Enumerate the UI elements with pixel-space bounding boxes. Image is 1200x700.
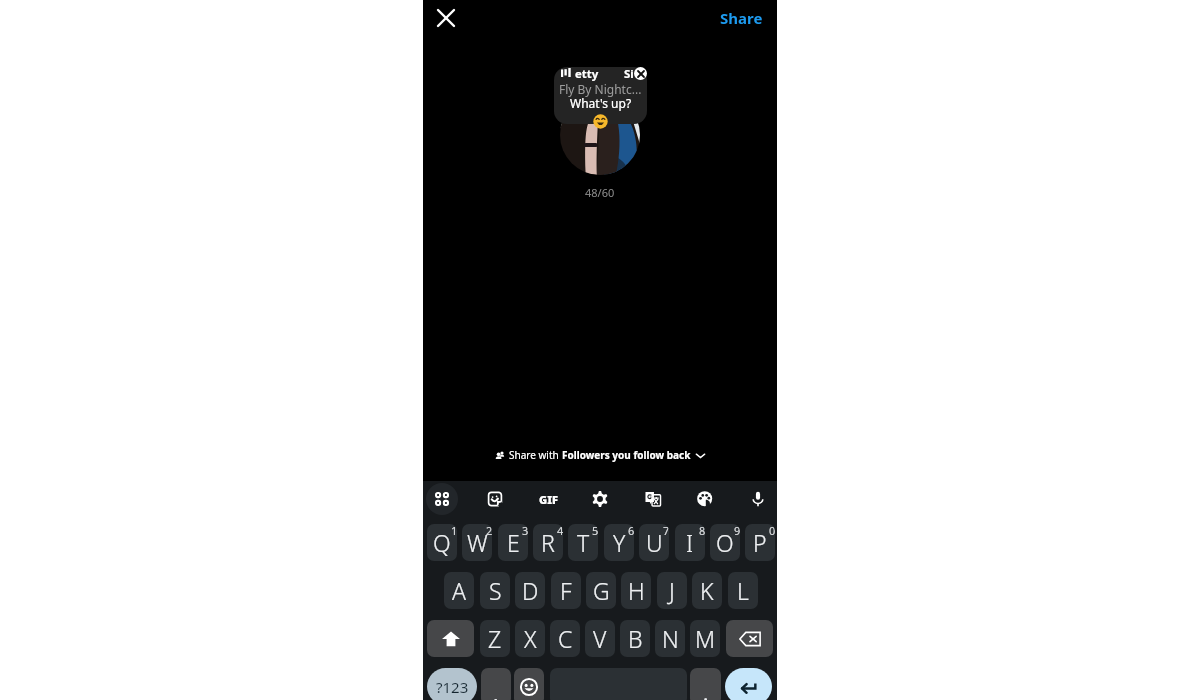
staticText: P — [753, 527, 767, 558]
button[interactable]: Translate — [637, 483, 669, 515]
staticText: N — [662, 623, 679, 654]
button[interactable]: Apps — [426, 483, 458, 515]
staticText: Followers you follow back — [562, 448, 691, 462]
staticText: Fly By Nightc... — [559, 81, 642, 97]
staticText: O — [716, 527, 734, 558]
button[interactable]: I — [675, 524, 705, 561]
staticText: C — [558, 623, 573, 654]
staticText: 4 — [557, 524, 563, 538]
button[interactable]: Enter — [725, 668, 772, 700]
staticText: 9 — [734, 524, 740, 538]
button[interactable]: V — [585, 620, 615, 657]
staticText: . — [703, 680, 709, 700]
staticText: , — [493, 680, 499, 700]
staticText: 0 — [769, 524, 775, 538]
staticText: ?123 — [436, 677, 469, 697]
button[interactable]: O — [710, 524, 740, 561]
button[interactable]: E — [498, 524, 528, 561]
button[interactable]: Settings — [584, 483, 616, 515]
staticText: E — [507, 527, 520, 558]
button[interactable]: M — [690, 620, 720, 657]
button[interactable]: F — [551, 572, 581, 609]
staticText: 1 — [451, 524, 457, 538]
staticText: H — [628, 575, 645, 606]
button[interactable]: Stickers — [479, 483, 511, 515]
staticText: M — [695, 623, 716, 654]
staticText: T — [577, 527, 590, 558]
staticText: 3 — [522, 524, 528, 538]
button[interactable]: G — [586, 572, 616, 609]
button[interactable]: Themes — [689, 483, 721, 515]
staticText: Share — [720, 8, 763, 28]
staticText: 5 — [592, 524, 598, 538]
button[interactable]: Remove music — [634, 67, 647, 80]
staticText: U — [646, 527, 663, 558]
staticText: Si — [624, 67, 634, 82]
button[interactable]: Voice input — [742, 483, 774, 515]
staticText: W — [467, 527, 488, 558]
button[interactable]: K — [692, 572, 722, 609]
button[interactable]: D — [515, 572, 545, 609]
button[interactable]: H — [621, 572, 651, 609]
staticText: L — [737, 575, 749, 606]
staticText: 48/60 — [585, 185, 615, 200]
staticText: K — [700, 575, 714, 606]
button[interactable]: N — [655, 620, 685, 657]
button[interactable]: P — [745, 524, 775, 561]
staticText: 2 — [486, 524, 492, 538]
staticText: F — [560, 575, 572, 606]
button[interactable]: Emoji — [514, 668, 544, 700]
staticText: S — [489, 575, 502, 606]
staticText: Y — [613, 527, 626, 558]
button[interactable]: Share with — [423, 442, 777, 468]
button[interactable]: A — [444, 572, 474, 609]
button[interactable]: Shift — [427, 620, 474, 657]
button[interactable]: Symbols — [427, 668, 477, 700]
button[interactable]: . — [690, 668, 721, 700]
staticText: What's up? — [570, 95, 632, 111]
button[interactable]: R — [533, 524, 563, 561]
button[interactable]: Y — [604, 524, 634, 561]
staticText: A — [452, 575, 466, 606]
button[interactable]: T — [568, 524, 598, 561]
button[interactable]: J — [657, 572, 687, 609]
button[interactable]: Backspace — [726, 620, 773, 657]
staticText: B — [628, 623, 643, 654]
staticText: R — [541, 527, 555, 558]
staticText: D — [522, 575, 539, 606]
staticText: etty — [575, 67, 599, 82]
button[interactable]: Q — [427, 524, 457, 561]
staticText: 8 — [699, 524, 705, 538]
staticText: X — [524, 623, 537, 654]
staticText: I — [686, 527, 694, 558]
staticText: Q — [433, 527, 451, 558]
staticText: Share with — [509, 448, 562, 462]
staticText: G — [593, 575, 610, 606]
staticText: J — [669, 575, 675, 606]
button[interactable]: Close — [431, 3, 461, 33]
button[interactable]: , — [481, 668, 511, 700]
staticText: Z — [488, 623, 502, 654]
button[interactable]: GIF — [532, 483, 564, 515]
button[interactable]: L — [728, 572, 758, 609]
button[interactable]: Share — [720, 8, 763, 28]
button[interactable]: U — [639, 524, 669, 561]
button[interactable]: X — [515, 620, 545, 657]
button[interactable]: C — [550, 620, 580, 657]
button[interactable]: Z — [480, 620, 510, 657]
staticText: 7 — [663, 524, 669, 538]
staticText: GIF — [539, 492, 558, 507]
button[interactable]: W — [462, 524, 492, 561]
staticText: V — [593, 623, 607, 654]
button[interactable]: S — [480, 572, 510, 609]
button[interactable]: B — [620, 620, 650, 657]
staticText: 6 — [628, 524, 634, 538]
